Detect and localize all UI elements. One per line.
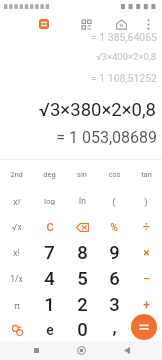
staticText: 2nd bbox=[10, 170, 23, 179]
staticText: = 1 385,64065 bbox=[0, 31, 157, 43]
button[interactable]: ln bbox=[66, 188, 98, 214]
staticText: 9 bbox=[109, 242, 120, 264]
staticText: √3×380×2×0,8 bbox=[0, 99, 156, 121]
staticText: 8 bbox=[77, 242, 88, 264]
button[interactable]: ÷ bbox=[130, 214, 162, 240]
staticText: ln bbox=[79, 196, 86, 206]
staticText: 0 bbox=[77, 319, 88, 341]
staticText: % bbox=[110, 221, 118, 233]
button[interactable]: ) bbox=[130, 188, 162, 214]
staticText: 3 bbox=[109, 294, 120, 316]
staticText: − bbox=[143, 272, 150, 286]
button[interactable]: 1/x bbox=[0, 266, 33, 292]
button[interactable]: Recents bbox=[26, 341, 46, 360]
button[interactable]: √x bbox=[0, 214, 33, 240]
staticText: xʸ bbox=[13, 195, 21, 207]
button[interactable]: 4 bbox=[33, 266, 66, 292]
button[interactable]: 2 bbox=[66, 292, 98, 318]
button[interactable]: Home bbox=[71, 341, 91, 360]
staticText: 6 bbox=[109, 268, 120, 290]
button[interactable]: Calculator bbox=[39, 19, 49, 29]
button[interactable]: x! bbox=[0, 240, 33, 266]
button[interactable]: deg bbox=[33, 161, 66, 187]
button[interactable]: , bbox=[98, 317, 130, 343]
button[interactable]: + bbox=[130, 292, 162, 318]
staticText: √3×400×2×0,8 bbox=[0, 51, 156, 62]
button[interactable]: 2nd bbox=[0, 161, 33, 187]
staticText: ÷ bbox=[143, 220, 150, 234]
button[interactable]: 8 bbox=[66, 240, 98, 266]
button[interactable] bbox=[130, 317, 162, 343]
staticText: = 1 053,08689 bbox=[0, 128, 157, 147]
button[interactable]: e bbox=[33, 317, 66, 343]
staticText: deg bbox=[43, 170, 56, 179]
staticText: 5 bbox=[77, 268, 88, 290]
button[interactable]: tan bbox=[130, 161, 162, 187]
button[interactable]: xʸ bbox=[0, 188, 33, 214]
button[interactable]: Back bbox=[117, 341, 137, 360]
button[interactable]: 6 bbox=[98, 266, 130, 292]
button[interactable]: Equals bbox=[131, 314, 157, 340]
button[interactable]: Scan bbox=[78, 16, 94, 32]
button[interactable]: % bbox=[98, 214, 130, 240]
button[interactable]: History bbox=[0, 317, 33, 343]
button[interactable]: cos bbox=[98, 161, 130, 187]
staticText: ) bbox=[144, 196, 148, 207]
staticText: tan bbox=[141, 170, 152, 179]
staticText: + bbox=[143, 298, 150, 312]
button[interactable]: C bbox=[33, 214, 66, 240]
staticText: e bbox=[46, 322, 54, 338]
button[interactable]: 1 bbox=[33, 292, 66, 318]
staticText: √x bbox=[12, 222, 22, 232]
button[interactable]: More options bbox=[140, 16, 156, 32]
other: History bbox=[8, 321, 26, 339]
staticText: 2 bbox=[77, 294, 88, 316]
button[interactable]: 9 bbox=[98, 240, 130, 266]
button[interactable]: × bbox=[130, 240, 162, 266]
staticText: log bbox=[44, 197, 55, 206]
staticText: sin bbox=[77, 170, 87, 179]
button[interactable]: sin bbox=[66, 161, 98, 187]
button[interactable]: 0 bbox=[66, 317, 98, 343]
button[interactable]: Home bbox=[113, 16, 129, 32]
staticText: × bbox=[143, 246, 150, 260]
button[interactable]: 5 bbox=[66, 266, 98, 292]
button[interactable]: Backspace bbox=[66, 214, 98, 240]
staticText: ( bbox=[112, 196, 116, 207]
button[interactable]: − bbox=[130, 266, 162, 292]
staticText: = 1 108,51252 bbox=[0, 72, 157, 84]
button[interactable]: ( bbox=[98, 188, 130, 214]
button[interactable]: log bbox=[33, 188, 66, 214]
other: Backspace bbox=[73, 218, 91, 236]
staticText: cos bbox=[108, 170, 121, 179]
button[interactable]: π bbox=[0, 292, 33, 318]
staticText: , bbox=[112, 316, 117, 338]
staticText: C bbox=[46, 221, 54, 234]
staticText: 1 bbox=[44, 294, 55, 316]
staticText: 4 bbox=[44, 268, 55, 290]
button[interactable]: 3 bbox=[98, 292, 130, 318]
staticText: π bbox=[14, 300, 20, 311]
staticText: 7 bbox=[44, 242, 55, 264]
staticText: 1/x bbox=[10, 274, 23, 284]
button[interactable]: 7 bbox=[33, 240, 66, 266]
staticText: x! bbox=[13, 248, 20, 258]
